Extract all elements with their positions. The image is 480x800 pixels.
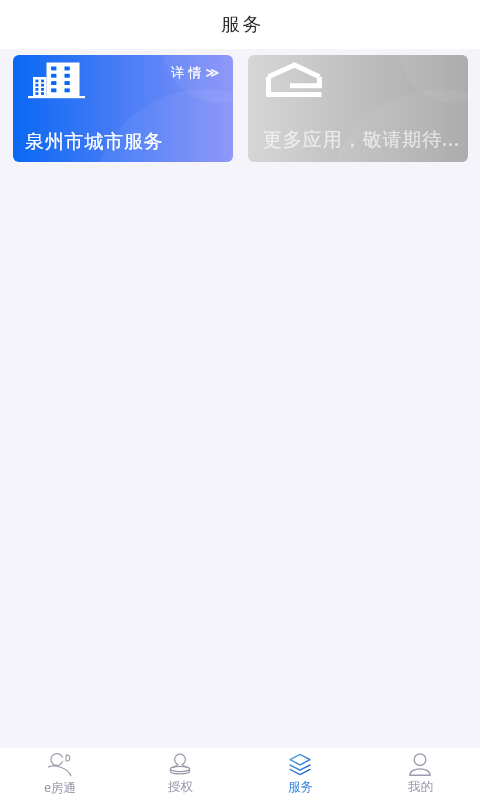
staticText: 更多应用，敬请期待...: [263, 126, 461, 152]
staticText: 泉州市城市服务: [25, 130, 164, 154]
button[interactable]: 我的: [360, 748, 480, 800]
staticText: 授权: [168, 779, 193, 795]
staticText: 服务: [221, 13, 265, 37]
button[interactable]: 服务: [240, 748, 360, 800]
button[interactable]: 更多应用，敬请期待...: [248, 55, 468, 162]
staticText: 我的: [408, 779, 433, 795]
staticText: 详情≫: [171, 64, 224, 80]
button[interactable]: 详情≫: [13, 55, 233, 162]
staticText: e房通: [44, 779, 77, 796]
staticText: 服务: [288, 779, 313, 795]
button[interactable]: e房通: [0, 748, 120, 800]
button[interactable]: 授权: [120, 748, 240, 800]
